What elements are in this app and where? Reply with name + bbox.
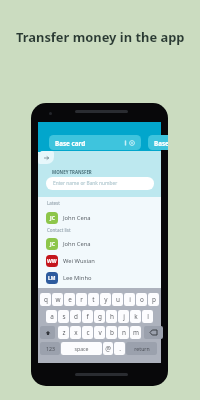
button[interactable]: . [114,342,125,355]
button[interactable]: a [46,310,57,323]
button[interactable]: Enter name or Bank number [46,177,154,190]
staticText: f [86,312,89,321]
button[interactable]: v [94,326,105,339]
staticText: Lee Minho [63,274,92,282]
button[interactable]: b [106,326,117,339]
button[interactable]: Forward [38,151,54,164]
staticText: Latest [47,200,60,206]
button[interactable]: return [126,342,157,355]
staticText: n [122,328,126,337]
staticText: s [62,312,66,321]
button[interactable]: j [118,310,129,323]
staticText: l [147,312,149,321]
button[interactable]: Base card [49,135,141,150]
button[interactable]: c [82,326,93,339]
button[interactable]: f [82,310,93,323]
staticText: p [152,295,156,304]
staticText: return [134,345,150,352]
staticText: a [50,312,54,321]
staticText: Wei Wuxian [63,257,95,265]
button[interactable]: Card settings [128,139,136,147]
staticText: MONEY TRANSFER [52,169,92,175]
staticText: t [92,295,95,304]
button[interactable]: h [106,310,117,323]
staticText: LM [48,275,56,282]
button[interactable]: t [88,293,99,306]
staticText: d [74,312,78,321]
button[interactable]: q [40,293,51,306]
staticText: w [55,295,61,304]
button[interactable]: p [148,293,159,306]
button[interactable]: JC [38,211,161,225]
staticText: b [110,328,114,337]
button[interactable]: z [58,326,69,339]
staticText: i [129,295,131,304]
staticText: . [119,344,121,353]
staticText: Transfer money in the app [16,28,185,46]
staticText: Base card [55,139,86,148]
staticText: e [68,295,72,304]
staticText: JC [50,241,55,248]
staticText: Enter name or Bank number [53,180,118,187]
button[interactable]: Card info [121,139,129,147]
staticText: space [74,345,89,352]
button[interactable]: x [70,326,81,339]
button[interactable]: d [70,310,81,323]
button[interactable]: o [136,293,147,306]
button[interactable]: n [118,326,129,339]
staticText: JC [50,215,55,222]
button[interactable]: LM [38,271,161,285]
button[interactable]: @ [103,342,113,355]
button[interactable]: y [100,293,111,306]
staticText: 123 [46,345,55,352]
staticText: r [80,295,83,304]
staticText: q [44,295,48,304]
button[interactable]: k [130,310,141,323]
staticText: h [110,312,114,321]
button[interactable]: Shift [40,326,55,339]
button[interactable]: u [112,293,123,306]
staticText: k [134,312,138,321]
staticText: y [104,295,108,304]
staticText: c [86,328,90,337]
button[interactable]: 123 [40,342,60,355]
staticText: z [62,328,66,337]
staticText: u [116,295,120,304]
staticText: m [133,328,139,337]
staticText: @ [105,344,111,353]
button[interactable]: g [94,310,105,323]
staticText: Contact list [47,227,71,233]
button[interactable]: space [61,342,102,355]
staticText: g [98,312,102,321]
button[interactable]: r [76,293,87,306]
button[interactable]: w [52,293,63,306]
staticText: j [123,312,125,321]
button[interactable]: l [142,310,153,323]
staticText: WW [47,258,57,265]
staticText: v [98,328,102,337]
button[interactable]: Base [148,135,168,150]
button[interactable]: Backspace [144,326,163,339]
staticText: x [74,328,78,337]
button[interactable]: s [58,310,69,323]
button[interactable]: JC [38,237,161,251]
button[interactable]: WW [38,254,161,268]
staticText: Base [154,139,168,148]
button[interactable]: e [64,293,75,306]
button[interactable]: i [124,293,135,306]
staticText: John Cena [63,214,91,222]
staticText: o [140,295,144,304]
staticText: John Cena [63,240,91,248]
button[interactable]: m [130,326,141,339]
